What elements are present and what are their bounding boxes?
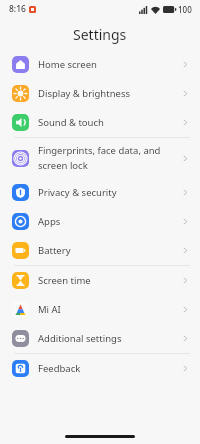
other: Open bbox=[181, 334, 190, 343]
button[interactable]: Additional settings bbox=[0, 324, 200, 353]
staticText: Privacy & security bbox=[38, 186, 181, 199]
button[interactable]: Home screen bbox=[0, 50, 200, 79]
other: Open bbox=[181, 188, 190, 197]
other: Open bbox=[181, 305, 190, 314]
button[interactable]: Apps bbox=[0, 207, 200, 236]
other: Open bbox=[181, 60, 190, 69]
staticText: 100 bbox=[178, 4, 192, 15]
staticText: Feedback bbox=[38, 362, 181, 375]
other: Open bbox=[181, 89, 190, 98]
staticText: Sound & touch bbox=[38, 116, 181, 129]
button[interactable]: Display & brightness bbox=[0, 79, 200, 108]
button[interactable]: Battery bbox=[0, 236, 200, 265]
button[interactable]: Fingerprints, face data, and bbox=[0, 138, 200, 178]
staticText: Battery bbox=[38, 244, 181, 257]
other: Open bbox=[181, 276, 190, 285]
staticText: Screen time bbox=[38, 274, 181, 287]
button[interactable]: Mi AI bbox=[0, 295, 200, 324]
other: Open bbox=[181, 217, 190, 226]
staticText: Settings bbox=[73, 25, 127, 44]
staticText: 8:16 bbox=[9, 3, 26, 15]
button[interactable]: Feedback bbox=[0, 354, 200, 383]
other: Open bbox=[181, 246, 190, 255]
other: Open bbox=[181, 118, 190, 127]
staticText: Fingerprints, face data, and bbox=[38, 144, 161, 157]
staticText: Display & brightness bbox=[38, 87, 181, 100]
staticText: Apps bbox=[38, 215, 181, 228]
staticText: Mi AI bbox=[38, 303, 181, 316]
staticText: Home screen bbox=[38, 58, 181, 71]
button[interactable]: Privacy & security bbox=[0, 178, 200, 207]
other: Open bbox=[181, 364, 190, 373]
staticText: screen lock bbox=[38, 159, 88, 172]
other: Open bbox=[181, 154, 190, 163]
button[interactable]: Screen time bbox=[0, 266, 200, 295]
staticText: Additional settings bbox=[38, 332, 181, 345]
button[interactable]: Sound & touch bbox=[0, 108, 200, 137]
